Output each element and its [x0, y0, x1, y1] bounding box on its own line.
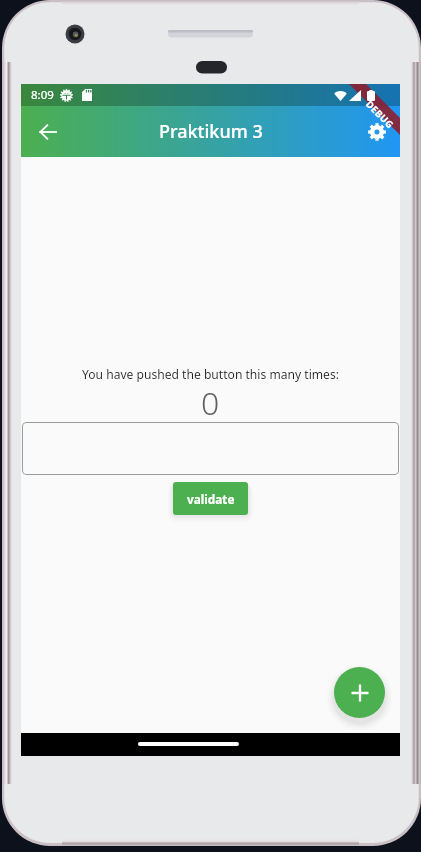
button[interactable] [22, 422, 399, 475]
staticText: DEBUG [363, 98, 397, 132]
staticText: 0 [201, 381, 220, 425]
staticText: Praktikum 3 [159, 119, 263, 144]
staticText: You have pushed the button this many tim… [82, 366, 339, 382]
button[interactable]: Settings [357, 106, 397, 157]
button[interactable]: validate [173, 482, 248, 515]
staticText: validate [187, 491, 235, 507]
staticText: 8:09 [31, 87, 54, 103]
button[interactable]: Add [334, 667, 385, 718]
button[interactable]: Back [28, 106, 68, 157]
